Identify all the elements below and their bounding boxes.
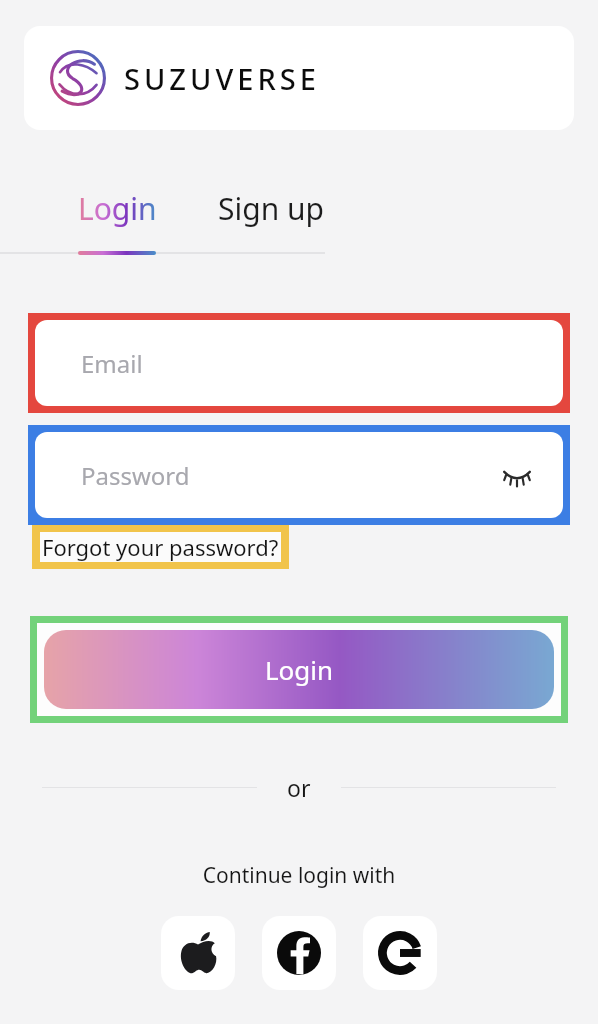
button[interactable]: Login [78,188,157,229]
staticText: Login [78,188,157,229]
button[interactable]: Email [35,320,563,406]
button[interactable]: Forgot your password? [40,532,281,562]
staticText: Email [81,347,143,380]
button[interactable]: Sign up [218,188,324,229]
staticText: Forgot your password? [42,532,279,562]
button[interactable]: Sign in with Apple [161,916,235,990]
button[interactable]: Show password [497,455,537,495]
staticText: or [287,772,311,803]
button[interactable]: Login [44,630,554,709]
staticText: Password [81,459,190,492]
button[interactable]: Sign in with Google [363,916,437,990]
staticText: SUZUVERSE [124,59,320,98]
staticText: Sign up [218,188,324,229]
button[interactable]: Password [35,432,563,518]
button[interactable]: Sign in with Facebook [262,916,336,990]
staticText: Continue login with [0,861,598,890]
staticText: Login [265,652,334,687]
